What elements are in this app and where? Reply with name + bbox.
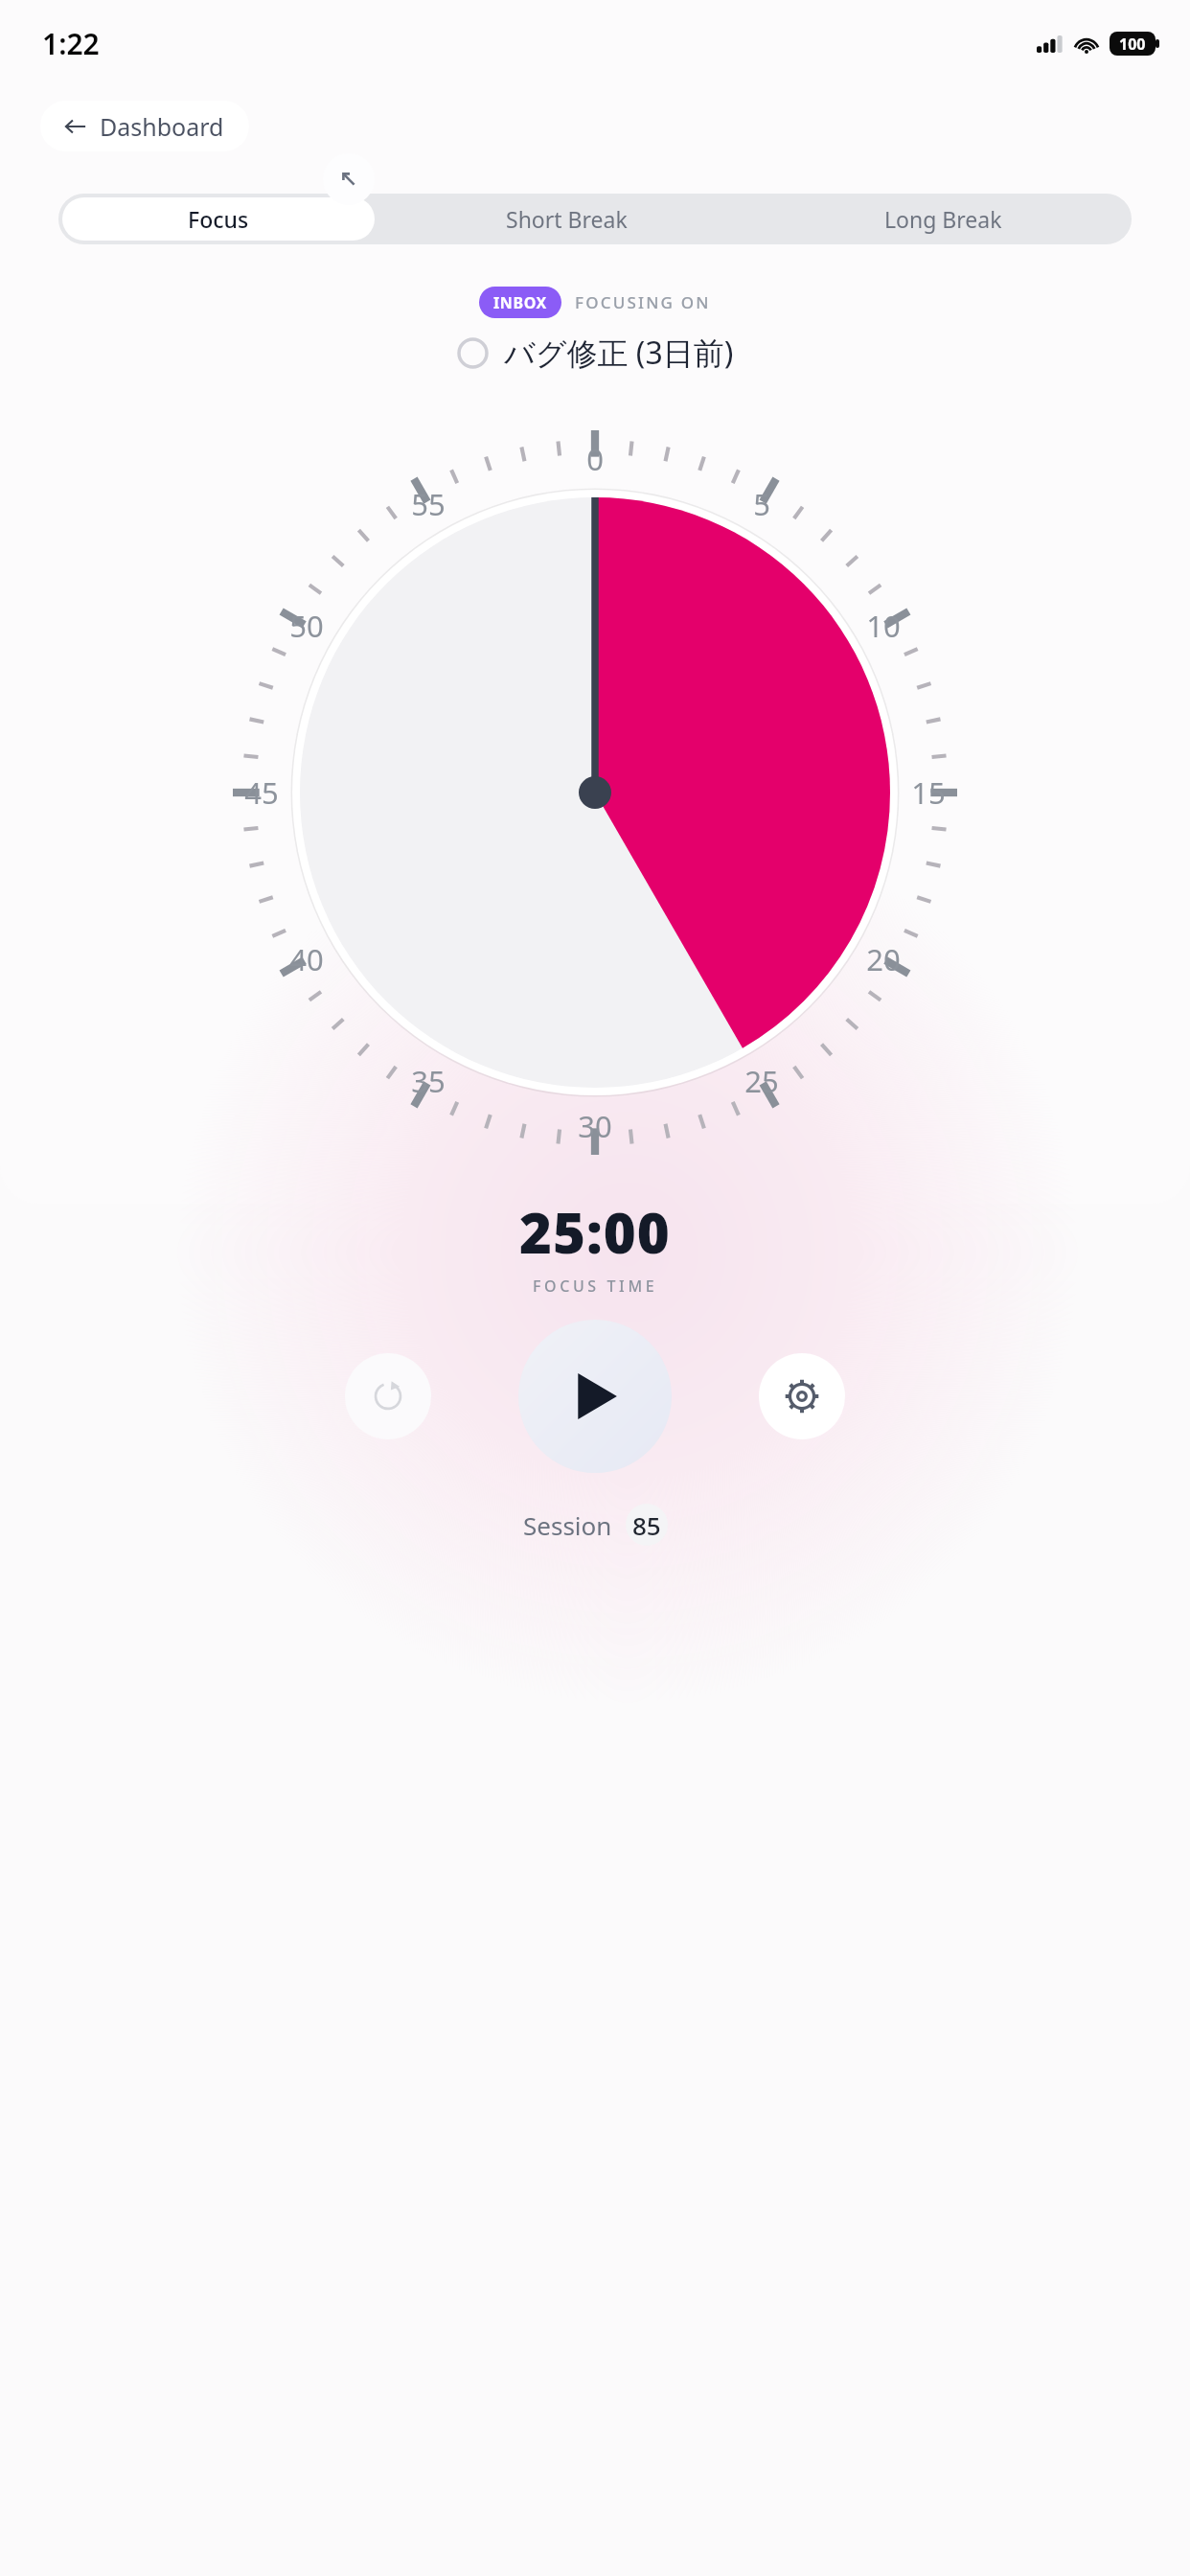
staticText: 25:00: [519, 1194, 671, 1270]
button[interactable]: Settings: [759, 1353, 845, 1439]
staticText: FOCUS TIME: [533, 1276, 658, 1297]
staticText: Focus: [188, 204, 249, 234]
staticText: 25: [744, 1061, 779, 1101]
staticText: Session: [523, 1508, 612, 1542]
staticText: INBOX: [493, 292, 547, 313]
button[interactable]: Focus: [62, 197, 375, 241]
staticText: 85: [632, 1508, 661, 1542]
staticText: Long Break: [884, 204, 1002, 234]
button[interactable]: Dashboard: [40, 101, 249, 151]
button[interactable]: INBOX: [479, 287, 561, 318]
staticText: 1:22: [42, 24, 100, 63]
button[interactable]: Expand: [323, 153, 375, 205]
staticText: 45: [244, 772, 279, 813]
button[interactable]: Session: [517, 1498, 674, 1552]
staticText: Dashboard: [100, 110, 224, 143]
staticText: バグ修正 (3日前): [504, 332, 734, 374]
staticText: 100: [1119, 34, 1146, 55]
staticText: 30: [578, 1106, 612, 1146]
staticText: 40: [289, 939, 324, 979]
staticText: 5: [753, 484, 770, 524]
staticText: 10: [866, 606, 901, 646]
staticText: 15: [911, 772, 946, 813]
button[interactable]: Long Break: [755, 194, 1132, 244]
staticText: 50: [289, 606, 324, 646]
staticText: Short Break: [506, 204, 628, 234]
staticText: 20: [866, 939, 901, 979]
button[interactable]: Start timer: [518, 1320, 672, 1473]
staticText: 55: [411, 484, 446, 524]
button[interactable]: Reset: [345, 1353, 431, 1439]
staticText: FOCUSING ON: [575, 291, 711, 313]
staticText: 0: [586, 439, 604, 479]
button[interactable]: Short Break: [378, 194, 755, 244]
button[interactable]: バグ修正 (3日前): [453, 328, 738, 378]
staticText: 35: [411, 1061, 446, 1101]
